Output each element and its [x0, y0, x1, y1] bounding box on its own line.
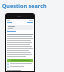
button[interactable] — [7, 59, 33, 62]
button[interactable]: Question search — [0, 0, 64, 11]
button[interactable] — [7, 66, 33, 68]
button[interactable] — [7, 25, 33, 30]
staticText: Question search — [2, 2, 47, 9]
button[interactable] — [7, 63, 33, 65]
